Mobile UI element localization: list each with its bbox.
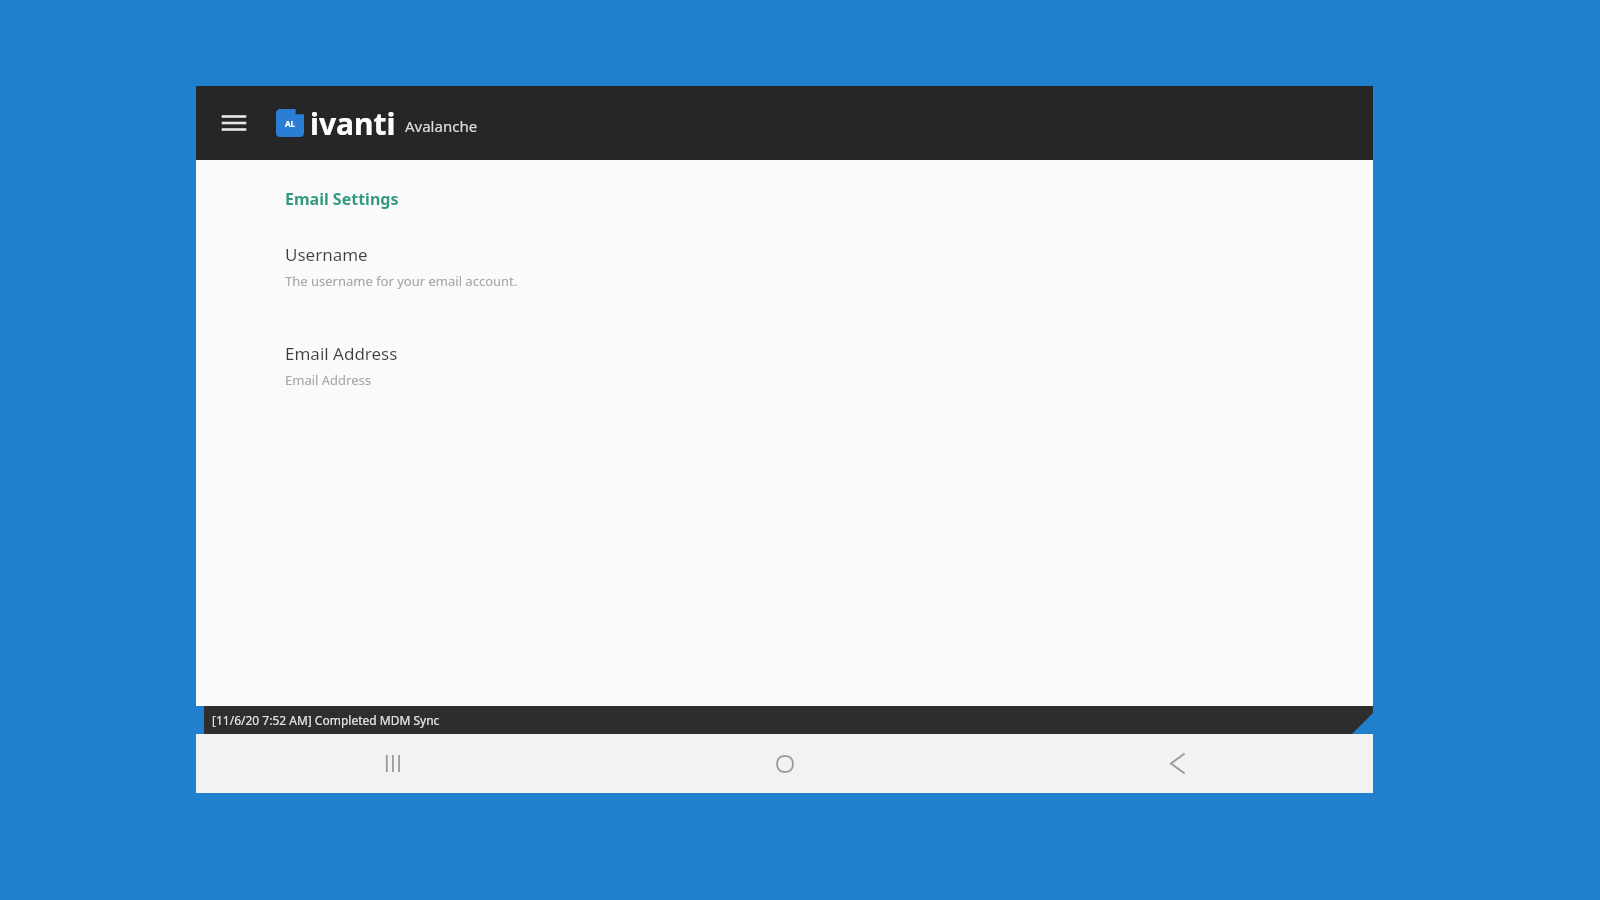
staticText: [11/6/20 7:52 AM] Completed MDM Sync <box>212 712 440 728</box>
staticText: Avalanche <box>405 116 478 136</box>
button[interactable]: Home <box>589 734 981 793</box>
staticText: AL <box>285 118 296 129</box>
button[interactable]: Recent apps <box>196 734 589 793</box>
button[interactable]: Back <box>981 734 1373 793</box>
staticText: ivanti <box>310 103 396 144</box>
staticText: Username <box>285 243 368 266</box>
button[interactable]: Email Address <box>285 342 1373 389</box>
staticText: The username for your email account. <box>285 272 518 290</box>
staticText: Email Address <box>285 371 371 389</box>
staticText: Email Settings <box>285 188 399 210</box>
button[interactable]: Open navigation menu <box>212 101 256 145</box>
button[interactable]: Username <box>285 243 1373 290</box>
staticText: Email Address <box>285 342 398 365</box>
